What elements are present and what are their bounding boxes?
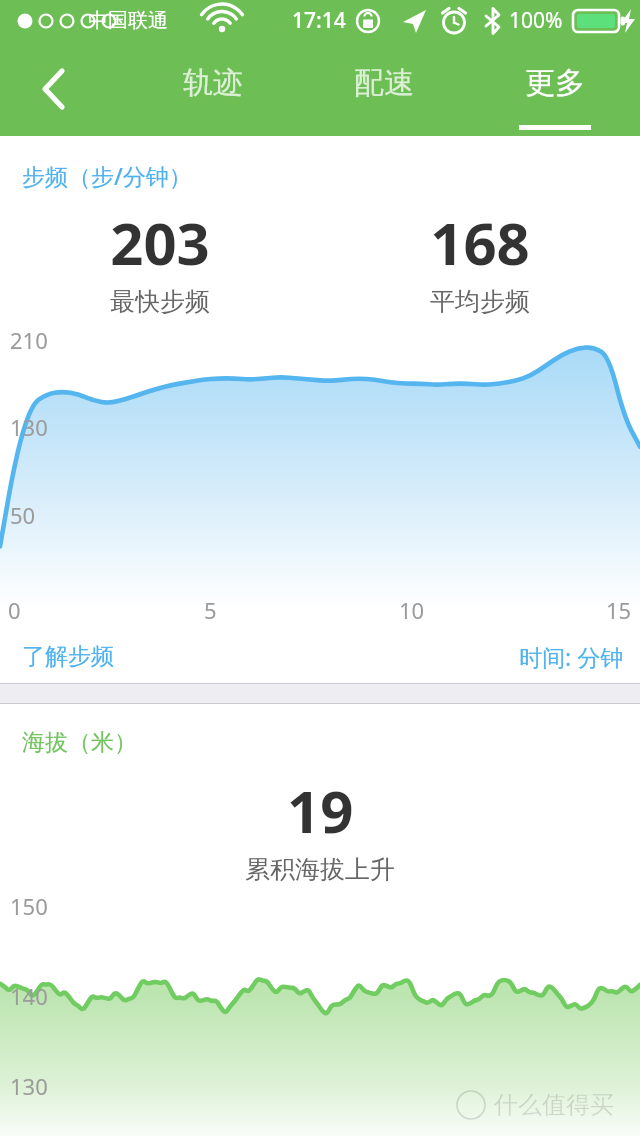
button[interactable]: 轨迹 [128,42,298,136]
staticText: 更多 [525,64,585,102]
staticText: 时间: 分钟 [519,641,624,672]
staticText: 17:14 [292,6,346,35]
staticText: 最快步频 [110,286,210,317]
staticText: 5 [204,595,217,625]
staticText: 中国联通 [88,8,168,33]
staticText: 配速 [354,64,414,102]
staticText: 了解步频 [22,642,114,671]
staticText: 210 [10,325,48,355]
button[interactable]: 了解步频 [0,634,136,679]
staticText: 什么值得买 [494,1090,614,1120]
staticText: 203 [110,203,210,282]
staticText: 0 [8,595,21,625]
staticText: 19 [287,771,354,850]
staticText: 平均步频 [430,286,530,317]
staticText: 15 [606,595,632,625]
button[interactable]: 时间: 分钟 [503,633,640,680]
staticText: 100% [509,6,563,35]
staticText: 140 [10,981,48,1011]
staticText: 168 [430,203,530,282]
staticText: 50 [10,500,36,530]
button[interactable]: Back [0,42,106,136]
staticText: 10 [399,595,425,625]
button[interactable]: 更多 [469,42,640,136]
staticText: 累积海拔上升 [245,854,395,885]
staticText: 海拔（米） [22,728,137,757]
staticText: 轨迹 [183,64,243,102]
staticText: 150 [10,891,48,921]
staticText: 130 [10,412,48,442]
button[interactable]: 配速 [298,42,469,136]
staticText: 130 [10,1071,48,1101]
staticText: 步频（步/分钟） [22,160,192,191]
